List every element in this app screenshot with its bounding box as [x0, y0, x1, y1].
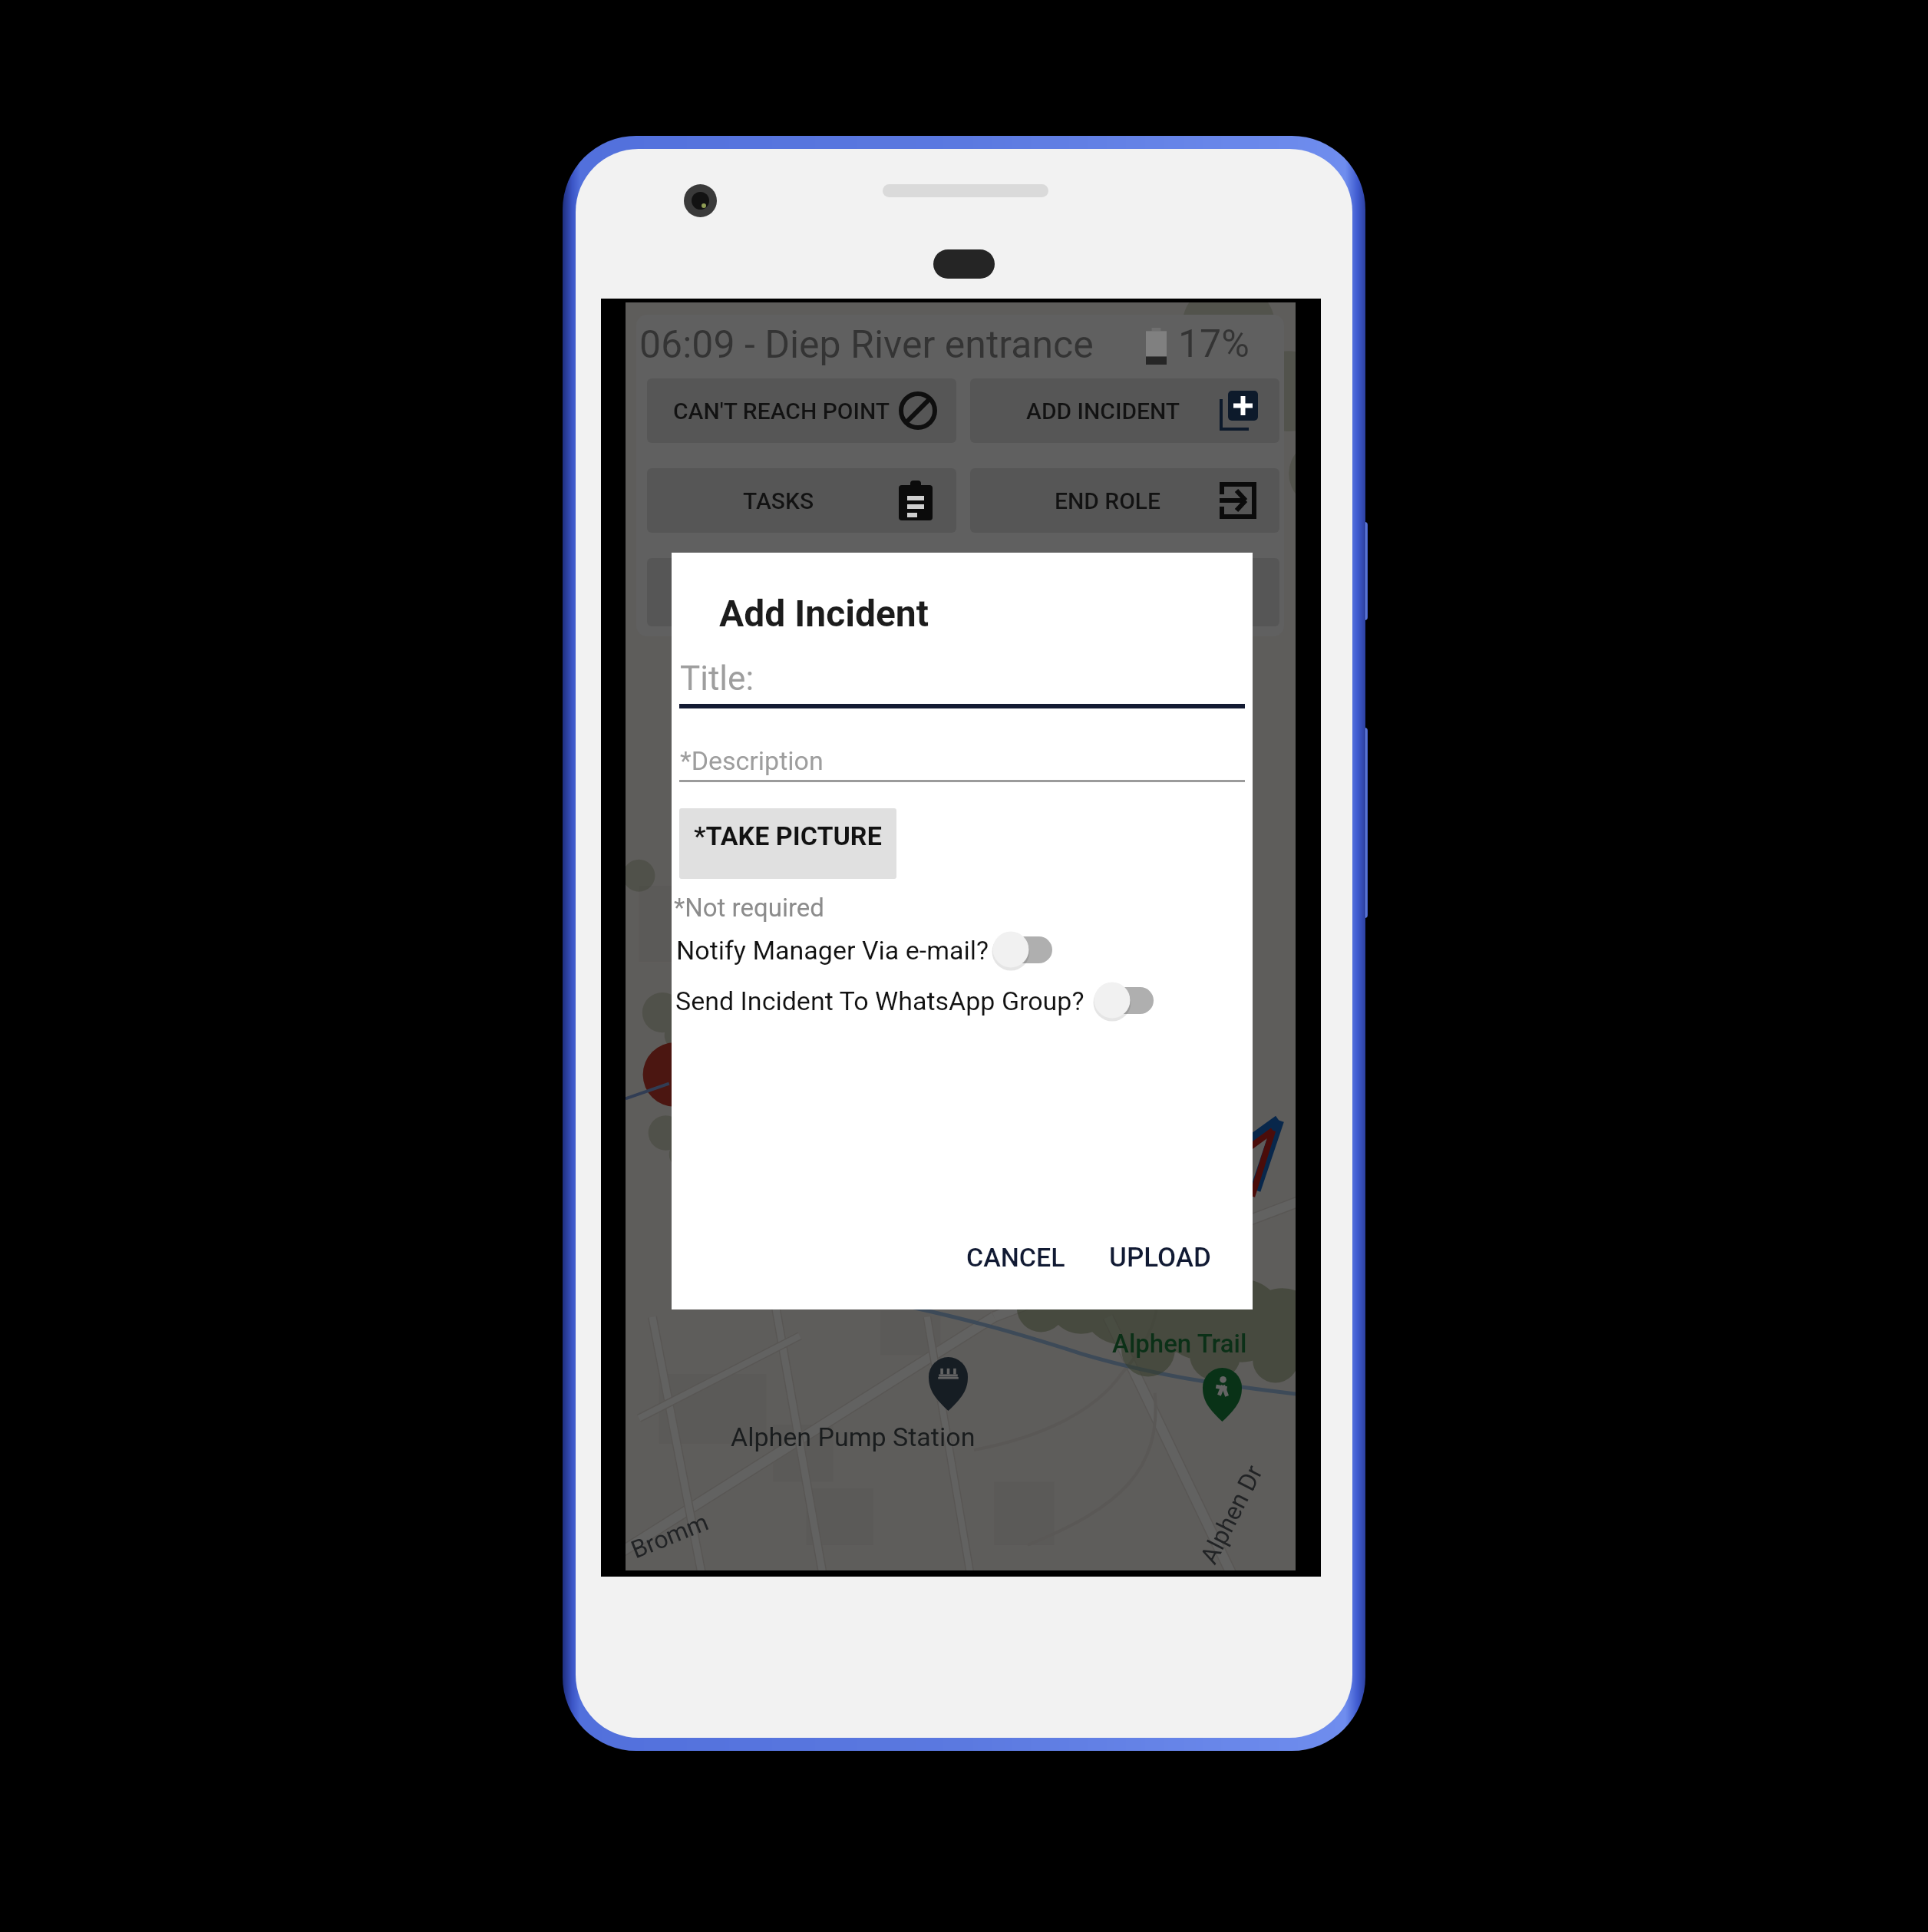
staticText: Alphen Trail	[1112, 1329, 1247, 1359]
staticText: *Description	[680, 745, 824, 776]
staticText: Alphen Pump Station	[731, 1422, 976, 1452]
button[interactable]: CANCEL	[959, 1234, 1073, 1280]
staticText: 06:09 - Diep River entrance	[639, 322, 1094, 368]
other: End role	[1220, 482, 1256, 519]
staticText: Add Incident	[719, 592, 929, 635]
button[interactable]: ADD INCIDENT	[970, 378, 1279, 443]
other: Add incident	[1220, 391, 1259, 431]
other: Send Incident To WhatsApp Group?	[1094, 980, 1158, 1022]
other: Notify Manager Via e-mail?	[992, 930, 1057, 971]
staticText: Send Incident To WhatsApp Group?	[675, 986, 1084, 1016]
staticText: CAN'T REACH POINT	[673, 398, 890, 424]
staticText: TASKS	[743, 487, 814, 514]
other: Tasks	[899, 481, 933, 520]
button[interactable]	[675, 974, 1170, 1026]
button[interactable]: END ROLE	[970, 468, 1279, 533]
staticText: Title:	[680, 659, 754, 698]
button[interactable]	[647, 558, 956, 626]
staticText: UPLOAD	[1109, 1242, 1211, 1273]
button[interactable]	[970, 558, 1279, 626]
button[interactable]: CAN'T REACH POINT	[647, 378, 956, 443]
staticText: Notify Manager Via e-mail?	[676, 935, 989, 966]
button[interactable]: TASKS	[647, 468, 956, 533]
button[interactable]	[676, 923, 1069, 976]
staticText: CANCEL	[966, 1242, 1065, 1273]
button[interactable]: UPLOAD	[1101, 1234, 1219, 1281]
staticText: ADD INCIDENT	[1026, 398, 1180, 424]
other: Battery	[1146, 328, 1167, 365]
staticText: Bromm	[627, 1507, 712, 1565]
staticText: END ROLE	[1055, 487, 1160, 514]
staticText: Alphen Dr	[1194, 1460, 1269, 1569]
staticText: *TAKE PICTURE	[694, 821, 882, 851]
staticText: *Not required	[674, 893, 824, 923]
staticText: 17%	[1178, 322, 1250, 367]
button[interactable]: *TAKE PICTURE	[679, 808, 896, 879]
